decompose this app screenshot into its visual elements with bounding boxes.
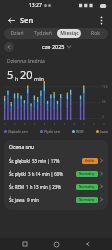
button[interactable]: Wstecz [5, 14, 17, 26]
button[interactable]: cze 2025 [42, 43, 71, 50]
staticText: Śr. REM [9, 184, 24, 190]
staticText: Jawa [100, 129, 108, 134]
staticText: 1 h 13 min | 23% [26, 184, 61, 190]
staticText: Miesiąc [60, 30, 79, 37]
staticText: Sen [20, 15, 34, 25]
staticText: Śr. jawa [9, 197, 25, 203]
staticText: Ocena snu [9, 144, 35, 151]
staticText: Głęboki sen [8, 129, 28, 134]
button[interactable]: Miesiąc [57, 29, 81, 38]
button[interactable]: Ekran główny [49, 238, 63, 250]
button[interactable]: Śr. jawa [9, 193, 103, 206]
staticText: Normalny [79, 198, 95, 202]
staticText: Krótki [85, 159, 95, 163]
staticText: Normalny [79, 172, 95, 176]
button[interactable]: Dzień [5, 29, 29, 38]
staticText: Rok [91, 30, 100, 37]
staticText: Śr. płytki [9, 171, 26, 177]
staticText: 20 [20, 67, 33, 82]
button[interactable]: Poprzedni miesiąc [4, 42, 14, 52]
staticText: 13:27 [29, 2, 42, 9]
staticText: Tydzień [34, 30, 52, 37]
staticText: Normalny [79, 185, 95, 189]
staticText: 9 min [27, 197, 39, 203]
staticText: 6h [102, 100, 106, 104]
button[interactable]: Śr. REM [9, 180, 103, 193]
staticText: Dzienna średnia [7, 58, 45, 65]
staticText: 5 [7, 67, 14, 82]
button[interactable]: Tydzień [31, 29, 55, 38]
staticText: 12h [102, 85, 108, 89]
staticText: min [34, 75, 44, 82]
button[interactable]: Śr. głęboki [9, 154, 103, 167]
button[interactable]: Więcej opcji [95, 14, 107, 26]
button[interactable]: Ostatnie [18, 238, 32, 250]
staticText: Płytki sen [44, 129, 60, 134]
staticText: 0 [102, 115, 104, 119]
staticText: Dzień [10, 30, 24, 37]
staticText: cze 2025 [42, 43, 65, 50]
button[interactable]: Wstecz [81, 238, 95, 250]
button[interactable]: Śr. płytki [9, 167, 103, 180]
staticText: 53 min | 17% [32, 158, 60, 164]
staticText: 3 h 14 min | 60% [28, 171, 63, 177]
staticText: h [15, 75, 19, 82]
staticText: REM [76, 129, 84, 134]
staticText: Śr. głęboki [9, 158, 30, 164]
button[interactable]: Rok [83, 29, 107, 38]
